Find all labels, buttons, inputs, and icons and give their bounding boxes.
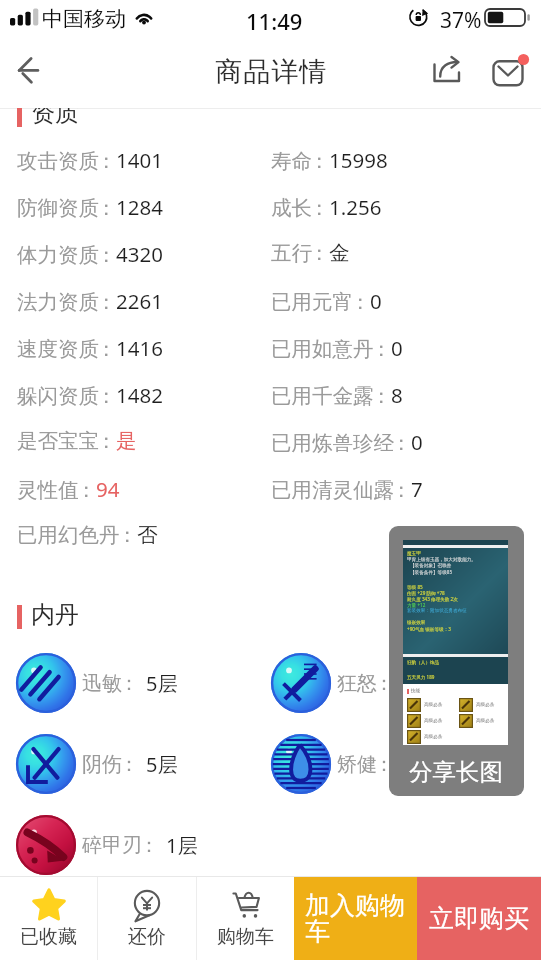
- staticText: ：: [76, 477, 93, 503]
- staticText: ：: [371, 336, 388, 362]
- staticText: 分享长图: [409, 757, 503, 787]
- staticText: 已用如意丹: [271, 336, 374, 362]
- staticText: 是否宝宝: [17, 428, 99, 454]
- staticText: 高级必杀: [476, 718, 495, 724]
- staticText: ：: [96, 383, 113, 409]
- staticText: 伤害 +29 防御 +78: [407, 590, 445, 596]
- staticText: 甲胄上镶有玉器，加大对敌能力。: [407, 557, 476, 563]
- staticText: ：: [139, 833, 159, 858]
- staticText: ：: [391, 477, 408, 503]
- staticText: 1层: [166, 832, 198, 859]
- button[interactable]: 购物车: [197, 877, 294, 960]
- staticText: ：: [96, 336, 113, 362]
- staticText: ：: [374, 671, 394, 696]
- staticText: 镶嵌效果: [407, 620, 426, 626]
- staticText: 魔玉甲: [407, 551, 421, 557]
- staticText: ：: [371, 383, 388, 409]
- staticText: 内丹: [31, 600, 79, 630]
- staticText: 耐久度 343 修理失败 2次: [407, 596, 458, 602]
- staticText: 购物车: [217, 925, 274, 949]
- staticText: 狂怒: [337, 671, 377, 696]
- staticText: 技能: [411, 688, 421, 694]
- staticText: 1482: [116, 381, 163, 409]
- staticText: ：: [117, 522, 134, 548]
- staticText: 5层: [401, 670, 433, 697]
- staticText: 2261: [116, 287, 163, 315]
- staticText: 速度资质: [17, 336, 99, 362]
- staticText: 已用幻色丹: [17, 522, 120, 548]
- staticText: 37%: [440, 6, 482, 35]
- staticText: 1284: [116, 193, 163, 221]
- staticText: 狂豹（人）饰品: [407, 660, 440, 666]
- staticText: 躲闪资质: [17, 383, 99, 409]
- button[interactable]: Share: [424, 45, 472, 101]
- staticText: 力量 +12: [407, 602, 426, 608]
- staticText: 等级 85: [407, 584, 423, 590]
- staticText: 灵性值: [17, 477, 79, 503]
- staticText: 高级必杀: [424, 702, 443, 708]
- staticText: ：: [96, 289, 113, 315]
- staticText: 还价: [128, 925, 166, 949]
- staticText: 防御资质: [17, 195, 99, 221]
- staticText: 已用元宵: [271, 289, 353, 315]
- staticText: 中国移动: [42, 6, 126, 32]
- staticText: 五天灵力 189: [407, 674, 435, 680]
- staticText: ：: [119, 752, 139, 777]
- staticText: 金: [329, 240, 350, 266]
- staticText: 1416: [116, 334, 163, 362]
- staticText: 成长: [271, 195, 312, 221]
- staticText: 已用清灵仙露: [271, 477, 394, 503]
- staticText: 0: [411, 428, 423, 456]
- staticText: 碎甲刃: [82, 833, 142, 858]
- staticText: 矫健: [337, 752, 377, 777]
- staticText: 套装效果：附加状态勇者布征: [407, 608, 467, 614]
- staticText: ：: [119, 671, 139, 696]
- staticText: 已收藏: [20, 925, 77, 949]
- staticText: ：: [309, 240, 326, 266]
- staticText: 1401: [116, 146, 163, 174]
- staticText: 94: [96, 475, 120, 503]
- staticText: 否: [137, 522, 158, 548]
- staticText: +90气血 镶嵌等级：3: [407, 626, 451, 632]
- staticText: ：: [374, 752, 394, 777]
- staticText: 5层: [401, 751, 433, 778]
- staticText: 高级必杀: [476, 702, 495, 708]
- staticText: 11:49: [246, 6, 303, 36]
- button[interactable]: Back: [4, 45, 56, 101]
- staticText: 商品详情: [215, 55, 327, 85]
- staticText: 8: [391, 381, 403, 409]
- staticText: ：: [96, 428, 113, 454]
- staticText: 高级必杀: [424, 734, 443, 740]
- button[interactable]: 分享长图: [389, 526, 524, 796]
- staticText: 加入购物车: [305, 890, 408, 948]
- staticText: 体力资质: [17, 242, 99, 268]
- staticText: 是: [116, 428, 137, 454]
- button[interactable]: 立即购买: [417, 877, 541, 960]
- staticText: 已用千金露: [271, 383, 374, 409]
- button[interactable]: 已收藏: [0, 877, 97, 960]
- staticText: 寿命: [271, 148, 312, 174]
- staticText: 0: [370, 287, 382, 315]
- staticText: 资质: [31, 108, 79, 128]
- staticText: 7: [411, 475, 423, 503]
- button[interactable]: 还价: [98, 877, 196, 960]
- staticText: 立即购买: [429, 903, 529, 934]
- staticText: 法力资质: [17, 289, 99, 315]
- staticText: 0: [391, 334, 403, 362]
- staticText: 已用炼兽珍经: [271, 430, 394, 456]
- staticText: ：: [350, 289, 367, 315]
- staticText: 阴伤: [82, 752, 122, 777]
- staticText: ：: [309, 148, 326, 174]
- button[interactable]: 加入购物车: [294, 877, 417, 960]
- staticText: ：: [96, 195, 113, 221]
- staticText: 5层: [146, 751, 178, 778]
- staticText: 1.256: [329, 193, 382, 221]
- staticText: ：: [309, 195, 326, 221]
- staticText: ：: [96, 242, 113, 268]
- staticText: ：: [391, 430, 408, 456]
- staticText: 五行: [271, 240, 312, 266]
- staticText: 【装备条件】等级85: [410, 569, 453, 575]
- staticText: 高级必杀: [424, 718, 443, 724]
- button[interactable]: Messages: [478, 45, 530, 101]
- staticText: 迅敏: [82, 671, 122, 696]
